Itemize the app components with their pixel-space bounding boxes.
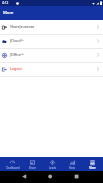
staticText: Logout (10, 66, 22, 71)
staticText: Share (29, 166, 36, 169)
staticText: 4:12 (2, 1, 9, 5)
button[interactable]: More (82, 157, 102, 171)
button[interactable]: Dashboard (3, 157, 22, 171)
staticText: More (89, 166, 96, 169)
staticText: JOffice™ (10, 52, 24, 57)
staticText: Dashboard (6, 166, 20, 169)
button[interactable]: Share (22, 157, 42, 171)
staticText: Stats (69, 166, 75, 169)
button[interactable]: Leads (42, 157, 62, 171)
button[interactable]: Logout (0, 63, 103, 77)
staticText: Leads (49, 166, 56, 169)
button[interactable]: Stats (62, 157, 82, 171)
button[interactable]: JCloud™ (0, 35, 103, 49)
staticText: More (3, 10, 14, 16)
button[interactable]: ShareJeunesse (0, 21, 103, 35)
staticText: JCloud™ (10, 38, 24, 43)
button[interactable]: JOffice™ (0, 49, 103, 63)
staticText: ShareJeunesse (10, 24, 35, 29)
